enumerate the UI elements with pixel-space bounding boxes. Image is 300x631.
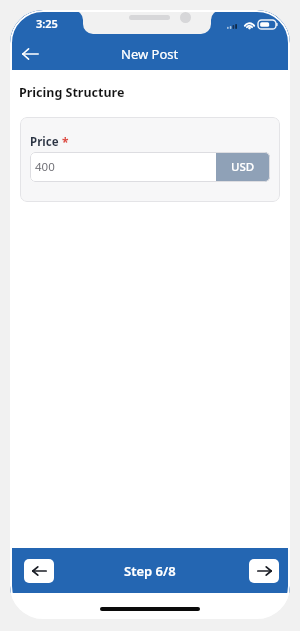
staticText: Pricing Structure xyxy=(19,84,125,101)
staticText: 3:25 xyxy=(36,16,58,31)
staticText: Step 6/8 xyxy=(124,562,176,580)
button[interactable]: Next step xyxy=(249,559,279,583)
button[interactable]: Previous step xyxy=(24,559,54,583)
staticText: 400 xyxy=(35,159,216,175)
staticText: Price xyxy=(30,134,59,150)
button[interactable]: Back xyxy=(16,40,44,68)
staticText: * xyxy=(62,134,69,150)
button[interactable]: 400 xyxy=(30,152,270,182)
staticText: USD xyxy=(231,159,255,175)
staticText: New Post xyxy=(121,45,179,63)
